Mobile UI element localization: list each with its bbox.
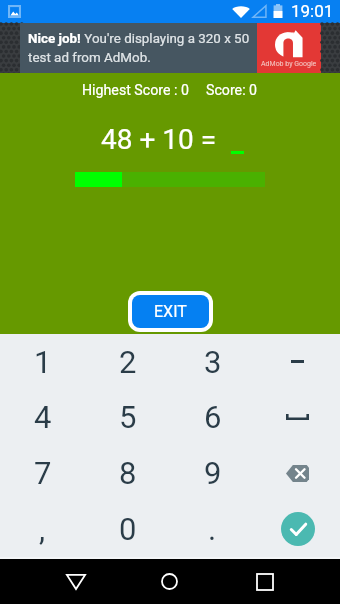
staticText: 5	[119, 399, 137, 435]
staticText: 1	[34, 344, 52, 380]
staticText: .	[208, 511, 217, 547]
staticText: AdMob by Google	[261, 60, 317, 68]
staticText: 7	[34, 455, 52, 491]
button[interactable]: .	[170, 501, 255, 557]
staticText: 3	[204, 344, 222, 380]
button[interactable]: Back	[53, 559, 98, 604]
staticText: EXIT	[154, 302, 187, 321]
button[interactable]: Space	[255, 389, 340, 445]
staticText: test ad from AdMob.	[28, 50, 151, 66]
button[interactable]: EXIT	[132, 295, 209, 328]
button[interactable]: Minus	[255, 334, 340, 389]
staticText: 9	[204, 455, 222, 491]
staticText: Nice job!	[28, 31, 81, 47]
button[interactable]: Recents	[242, 559, 287, 604]
staticText: Score: 0	[206, 82, 258, 99]
button[interactable]: 8	[85, 445, 170, 501]
button[interactable]: 6	[170, 389, 255, 445]
button[interactable]: Home	[147, 559, 192, 604]
button[interactable]: 0	[85, 501, 170, 557]
staticText: ,	[39, 511, 46, 547]
staticText: 19:01	[291, 1, 334, 21]
staticText: 0	[119, 511, 137, 547]
button[interactable]: Enter	[255, 501, 340, 557]
staticText: You're displaying a 320 x 50	[81, 31, 250, 47]
staticText: 8	[119, 455, 137, 491]
button[interactable]: 2	[85, 334, 170, 389]
button[interactable]: 9	[170, 445, 255, 501]
staticText: 4	[34, 399, 52, 435]
staticText: 6	[204, 399, 222, 435]
button[interactable]: ,	[0, 501, 85, 557]
staticText: Highest Score : 0	[82, 82, 189, 99]
button[interactable]: 4	[0, 389, 85, 445]
staticText: 2	[119, 344, 137, 380]
button[interactable]: 3	[170, 334, 255, 389]
button[interactable]: 1	[0, 334, 85, 389]
staticText: 48 + 10 =	[101, 123, 217, 151]
button[interactable]: Backspace	[255, 445, 340, 501]
button[interactable]: 5	[85, 389, 170, 445]
button[interactable]: 7	[0, 445, 85, 501]
